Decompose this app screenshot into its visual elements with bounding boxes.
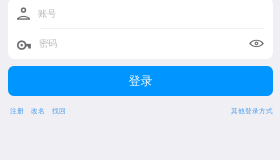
staticText: 找回 <box>52 107 66 115</box>
staticText: 账号 <box>38 8 56 19</box>
button[interactable]: 登录 <box>8 66 273 96</box>
button[interactable]: 显示密码 <box>249 37 264 50</box>
button[interactable]: 其他登录方式 <box>231 107 273 115</box>
button[interactable]: 改名 <box>31 107 45 115</box>
staticText: 密码 <box>39 38 57 49</box>
button[interactable]: 注册 <box>10 107 24 115</box>
staticText: 注册 <box>10 107 24 115</box>
staticText: 改名 <box>31 107 45 115</box>
staticText: 其他登录方式 <box>231 107 273 115</box>
button[interactable]: 找回 <box>52 107 66 115</box>
staticText: 登录 <box>128 74 152 88</box>
